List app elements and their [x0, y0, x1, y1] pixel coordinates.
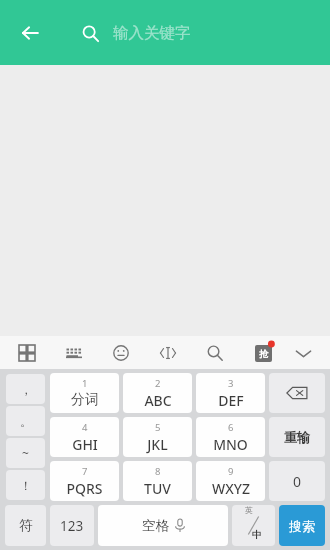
staticText: 输入关键字 — [113, 23, 191, 43]
button[interactable]: 搜索 — [279, 505, 325, 546]
button[interactable]: Promotion — [248, 338, 278, 368]
staticText: ~ — [22, 445, 29, 461]
button[interactable]: 3 — [196, 373, 265, 413]
button[interactable]: Hide keyboard — [288, 338, 318, 368]
button[interactable]: 5 — [123, 417, 192, 457]
staticText: JKL — [147, 435, 168, 454]
staticText: 3 — [228, 377, 234, 390]
staticText: 7 — [82, 465, 88, 478]
button[interactable]: Keyboard — [61, 340, 87, 366]
staticText: 9 — [228, 465, 234, 478]
button[interactable]: ， — [6, 374, 45, 404]
button[interactable]: 4 — [50, 417, 119, 457]
button[interactable]: Cursor — [155, 340, 181, 366]
button[interactable]: 。 — [6, 406, 45, 436]
staticText: 重输 — [284, 429, 310, 445]
button[interactable]: 0 — [269, 461, 325, 501]
button[interactable]: ~ — [6, 438, 45, 468]
staticText: 分词 — [71, 391, 99, 409]
button[interactable]: 英 — [232, 505, 275, 546]
button[interactable]: Back — [8, 11, 52, 55]
staticText: 英 — [245, 505, 253, 515]
button[interactable]: 2 — [123, 373, 192, 413]
staticText: 4 — [82, 421, 88, 434]
staticText: TUV — [144, 479, 171, 498]
staticText: 6 — [228, 421, 234, 434]
staticText: 1 — [82, 377, 88, 390]
button[interactable]: 7 — [50, 461, 119, 501]
staticText: 123 — [60, 517, 84, 535]
staticText: 0 — [293, 472, 302, 491]
staticText: 2 — [155, 377, 161, 390]
staticText: 符 — [19, 517, 33, 534]
button[interactable]: 1 — [50, 373, 119, 413]
staticText: 搜索 — [289, 518, 315, 534]
staticText: 。 — [20, 414, 32, 429]
staticText: 5 — [155, 421, 161, 434]
button[interactable]: Search — [202, 340, 228, 366]
button[interactable]: 123 — [50, 505, 94, 546]
staticText: ！ — [20, 478, 32, 493]
staticText: 8 — [155, 465, 161, 478]
staticText: ， — [20, 382, 32, 397]
button[interactable]: 8 — [123, 461, 192, 501]
button[interactable]: Delete — [269, 373, 325, 413]
staticText: MNO — [213, 435, 248, 454]
button[interactable]: ！ — [6, 470, 45, 500]
button[interactable]: 重输 — [269, 417, 325, 457]
staticText: ABC — [144, 391, 172, 410]
button[interactable]: Keyboard layouts — [14, 340, 40, 366]
button[interactable]: 6 — [196, 417, 265, 457]
staticText: 中 — [252, 529, 262, 541]
staticText: 空格 — [142, 517, 169, 534]
button[interactable]: 9 — [196, 461, 265, 501]
button[interactable]: 输入关键字 — [82, 23, 191, 43]
staticText: WXYZ — [212, 479, 250, 498]
button[interactable]: 空格 — [98, 505, 228, 546]
button[interactable]: 符 — [5, 505, 46, 546]
button[interactable]: Emoji — [108, 340, 134, 366]
staticText: 抢 — [259, 348, 268, 359]
staticText: DEF — [218, 391, 244, 410]
staticText: GHI — [72, 435, 98, 454]
staticText: PQRS — [66, 479, 103, 498]
